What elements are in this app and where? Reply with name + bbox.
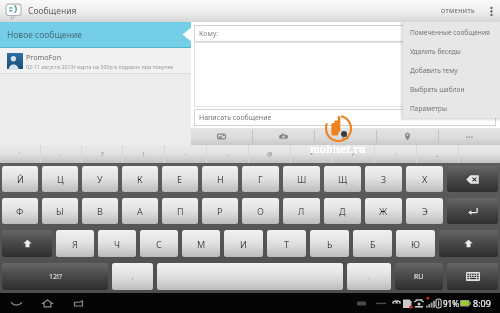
button[interactable]: Attach picture xyxy=(191,128,252,145)
button[interactable]: Удалить беседы xyxy=(403,42,500,61)
button[interactable]: Ф xyxy=(2,198,38,224)
button[interactable]: ОТМЕНИТЬ xyxy=(434,0,482,22)
staticText: ? xyxy=(101,150,104,158)
button[interactable]: - xyxy=(165,145,206,163)
button[interactable]: З xyxy=(365,166,402,192)
button[interactable]: У xyxy=(82,166,118,192)
button[interactable]: Я xyxy=(56,230,94,257)
button[interactable]: С xyxy=(140,230,178,257)
button[interactable]: 12!? xyxy=(2,263,108,290)
staticText: ОТМЕНИТЬ xyxy=(441,7,475,15)
button[interactable]: Switch input method xyxy=(447,263,498,290)
button[interactable]: Э xyxy=(406,198,443,224)
button[interactable]: Т xyxy=(267,230,306,257)
staticText: _ xyxy=(436,150,439,158)
button[interactable]: Messaging xyxy=(5,2,22,21)
button[interactable]: Record audio xyxy=(315,128,376,145)
staticText: Ф xyxy=(16,205,24,217)
button[interactable]: Recent apps xyxy=(65,293,91,313)
button[interactable]: Добавить тему xyxy=(403,61,500,80)
button[interactable]: Помеченные сообщения xyxy=(403,22,500,42)
staticText: Ш xyxy=(297,173,307,185)
button[interactable]: Take photo xyxy=(253,128,314,145)
staticText: Я xyxy=(72,238,78,250)
button[interactable]: И xyxy=(224,230,263,257)
staticText: ! xyxy=(143,150,145,158)
button[interactable]: Р xyxy=(202,198,238,224)
button[interactable]: Ь xyxy=(310,230,349,257)
staticText: Ц xyxy=(57,173,64,185)
button[interactable]: , xyxy=(112,263,153,290)
button[interactable]: RU xyxy=(395,263,443,290)
button[interactable]: _ xyxy=(417,145,458,163)
button[interactable]: . xyxy=(347,263,391,290)
button[interactable] xyxy=(194,42,496,107)
button[interactable] xyxy=(157,263,343,290)
button[interactable]: Й xyxy=(2,166,38,192)
button[interactable]: Выбрать шаблон xyxy=(403,80,500,99)
staticText: ' xyxy=(19,150,21,158)
button[interactable]: Щ xyxy=(324,166,361,192)
button[interactable]: , xyxy=(207,145,248,163)
staticText: . xyxy=(368,273,370,281)
button[interactable]: Ш xyxy=(283,166,320,192)
button[interactable]: Параметры xyxy=(403,99,500,118)
staticText: Параметры xyxy=(410,104,447,113)
button[interactable]: PromoFon xyxy=(0,48,191,73)
button[interactable]: @ xyxy=(249,145,290,163)
button[interactable]: Написать сообщение xyxy=(194,109,496,126)
staticText: Кому: xyxy=(199,29,219,39)
button[interactable]: / xyxy=(333,145,374,163)
button[interactable]: Ч xyxy=(98,230,136,257)
button[interactable]: ' xyxy=(0,145,40,163)
button[interactable]: М xyxy=(182,230,220,257)
button[interactable]: Н xyxy=(202,166,238,192)
button[interactable]: Shift xyxy=(2,230,52,257)
button[interactable]: П xyxy=(162,198,198,224)
button[interactable]: Новое сообщение xyxy=(0,22,191,47)
button[interactable]: Ж xyxy=(365,198,402,224)
button[interactable]: ? xyxy=(82,145,122,163)
button[interactable]: Share location xyxy=(377,128,438,145)
button[interactable]: . xyxy=(41,145,81,163)
button[interactable]: А xyxy=(122,198,158,224)
button[interactable]: Ю xyxy=(396,230,435,257)
button[interactable]: К xyxy=(122,166,158,192)
staticText: Д xyxy=(339,205,346,217)
staticText: 12!? xyxy=(49,272,62,282)
button[interactable]: Кому: xyxy=(194,25,496,42)
staticText: Е xyxy=(177,173,183,185)
staticText: / xyxy=(352,150,355,158)
button[interactable]: More xyxy=(439,128,500,145)
staticText: @ xyxy=(267,150,273,158)
button[interactable]: Е xyxy=(162,166,198,192)
button[interactable]: Г xyxy=(242,166,279,192)
staticText: Э xyxy=(422,205,428,217)
staticText: Ч xyxy=(114,238,121,250)
button[interactable]: Enter xyxy=(447,198,498,224)
staticText: З xyxy=(381,173,387,185)
button[interactable]: Ц xyxy=(42,166,78,192)
button[interactable]: Ы xyxy=(42,198,78,224)
button[interactable]: : xyxy=(375,145,416,163)
button[interactable]: О xyxy=(242,198,279,224)
button[interactable]: Backspace xyxy=(447,166,498,192)
button[interactable]: Home xyxy=(34,293,60,313)
staticText: + xyxy=(310,150,314,158)
button[interactable]: + xyxy=(291,145,332,163)
staticText: Л xyxy=(298,205,305,217)
staticText: М xyxy=(197,238,206,250)
button[interactable]: ! xyxy=(123,145,164,163)
button[interactable]: Б xyxy=(353,230,392,257)
button[interactable]: Х xyxy=(406,166,443,192)
button[interactable]: Back xyxy=(3,293,29,313)
button[interactable] xyxy=(459,145,500,163)
button[interactable]: В xyxy=(82,198,118,224)
button[interactable]: More options xyxy=(482,0,500,22)
staticText: : xyxy=(395,150,397,158)
staticText: Написать сообщение xyxy=(199,113,272,123)
button[interactable]: Shift xyxy=(439,230,498,257)
staticText: , xyxy=(227,150,229,158)
button[interactable]: Д xyxy=(324,198,361,224)
button[interactable]: Л xyxy=(283,198,320,224)
